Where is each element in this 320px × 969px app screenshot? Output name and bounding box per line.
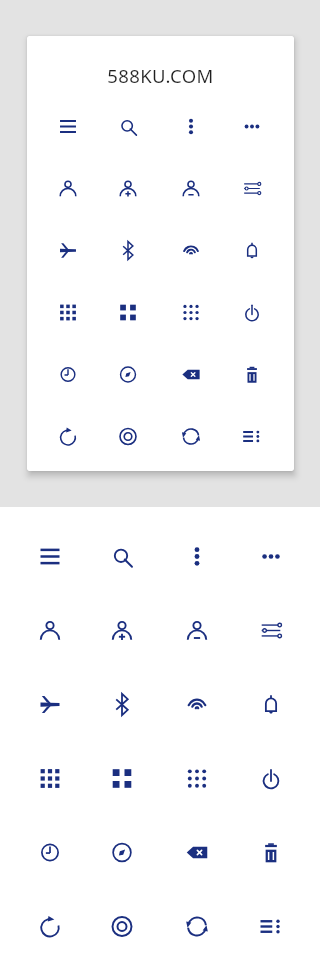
button[interactable]: Sync <box>161 406 221 467</box>
button[interactable]: Backspace <box>161 344 221 405</box>
button[interactable]: Compass <box>98 344 158 405</box>
button[interactable]: Power <box>235 742 307 815</box>
button[interactable]: Delete <box>222 344 282 405</box>
button[interactable]: Notifications <box>222 220 282 281</box>
button[interactable]: Backspace <box>161 816 233 889</box>
button[interactable]: All apps <box>161 282 221 343</box>
button[interactable]: Settings <box>222 158 282 219</box>
button[interactable]: Person <box>38 158 98 219</box>
button[interactable]: Delete <box>235 816 307 889</box>
button[interactable]: Record <box>86 890 158 963</box>
button[interactable]: Menu <box>14 520 86 593</box>
button[interactable]: Sync <box>161 890 233 963</box>
button[interactable]: Settings <box>235 594 307 667</box>
button[interactable]: Airplane mode <box>14 668 86 741</box>
button[interactable]: Clock <box>14 816 86 889</box>
button[interactable]: Add person <box>98 158 158 219</box>
button[interactable]: More options <box>161 520 233 593</box>
button[interactable]: Power <box>222 282 282 343</box>
button[interactable]: Compass <box>86 816 158 889</box>
button[interactable]: Wi-Fi <box>161 220 221 281</box>
button[interactable]: List <box>222 406 282 467</box>
button[interactable]: Remove person <box>161 594 233 667</box>
button[interactable]: Bluetooth <box>86 668 158 741</box>
button[interactable]: All apps <box>161 742 233 815</box>
button[interactable]: Remove person <box>161 158 221 219</box>
button[interactable]: Refresh <box>38 406 98 467</box>
button[interactable]: More options <box>161 96 221 157</box>
button[interactable]: Notifications <box>235 668 307 741</box>
button[interactable]: Bluetooth <box>98 220 158 281</box>
button[interactable]: Search <box>86 520 158 593</box>
button[interactable]: Apps <box>38 282 98 343</box>
button[interactable]: Person <box>14 594 86 667</box>
button[interactable]: Dashboard <box>86 742 158 815</box>
button[interactable]: Menu <box>38 96 98 157</box>
button[interactable]: Clock <box>38 344 98 405</box>
button[interactable]: More <box>222 96 282 157</box>
button[interactable]: List <box>235 890 307 963</box>
button[interactable]: Dashboard <box>98 282 158 343</box>
button[interactable]: Refresh <box>14 890 86 963</box>
staticText: 588KU.COM <box>27 63 294 88</box>
button[interactable]: Apps <box>14 742 86 815</box>
button[interactable]: Add person <box>86 594 158 667</box>
button[interactable]: Search <box>98 96 158 157</box>
button[interactable]: Airplane mode <box>38 220 98 281</box>
button[interactable]: Record <box>98 406 158 467</box>
button[interactable]: Wi-Fi <box>161 668 233 741</box>
button[interactable]: More <box>235 520 307 593</box>
